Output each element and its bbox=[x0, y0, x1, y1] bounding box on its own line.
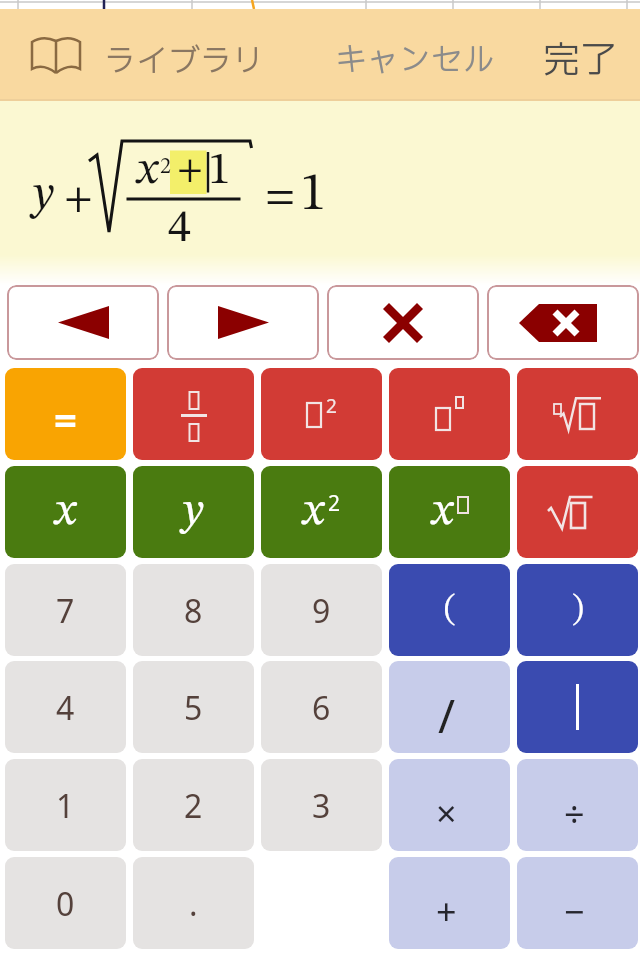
button[interactable] bbox=[389, 368, 510, 460]
staticText: 2 bbox=[184, 784, 203, 828]
button[interactable]: 5 bbox=[133, 661, 254, 753]
staticText: x bbox=[432, 489, 453, 535]
button[interactable] bbox=[327, 285, 479, 360]
button[interactable]: x bbox=[5, 466, 126, 558]
button[interactable]: キャンセル bbox=[330, 37, 500, 83]
button[interactable]: 3 bbox=[261, 759, 382, 851]
button[interactable]: 9 bbox=[261, 564, 382, 656]
button[interactable]: . bbox=[133, 857, 254, 949]
button[interactable] bbox=[517, 661, 638, 753]
button[interactable]: 完了 bbox=[535, 34, 625, 82]
button[interactable]: 4 bbox=[5, 661, 126, 753]
staticText: 2 bbox=[328, 489, 341, 518]
button[interactable]: ) bbox=[517, 564, 638, 656]
staticText: + bbox=[436, 887, 457, 936]
staticText: . bbox=[189, 882, 198, 926]
staticText: y bbox=[183, 489, 204, 535]
staticText: 0 bbox=[56, 882, 75, 926]
staticText: + bbox=[177, 153, 203, 189]
button[interactable]: x bbox=[261, 466, 382, 558]
staticText: = bbox=[265, 177, 296, 219]
staticText: 5 bbox=[184, 686, 203, 730]
button[interactable] bbox=[133, 368, 254, 460]
button[interactable]: 8 bbox=[133, 564, 254, 656]
button[interactable] bbox=[7, 285, 159, 360]
button[interactable]: = bbox=[5, 368, 126, 460]
button[interactable]: + bbox=[389, 857, 510, 949]
staticText: x bbox=[303, 489, 324, 535]
button[interactable]: ライブラリ bbox=[20, 27, 270, 85]
button[interactable] bbox=[517, 368, 638, 460]
button[interactable]: / bbox=[389, 661, 510, 753]
staticText: ( bbox=[444, 593, 456, 627]
button[interactable]: 0 bbox=[5, 857, 126, 949]
button[interactable]: 2 bbox=[133, 759, 254, 851]
staticText: 2 bbox=[160, 156, 171, 178]
button[interactable]: × bbox=[389, 759, 510, 851]
staticText: 8 bbox=[184, 589, 203, 633]
staticText: / bbox=[438, 684, 456, 747]
staticText: 1 bbox=[208, 148, 231, 194]
staticText: 3 bbox=[312, 784, 331, 828]
button[interactable]: − bbox=[517, 857, 638, 949]
button[interactable]: 6 bbox=[261, 661, 382, 753]
button[interactable] bbox=[517, 466, 638, 558]
staticText: + bbox=[64, 180, 93, 220]
button[interactable] bbox=[167, 285, 319, 360]
staticText: 4 bbox=[56, 686, 75, 730]
staticText: 4 bbox=[168, 206, 191, 252]
staticText: x bbox=[55, 489, 76, 535]
staticText: ÷ bbox=[564, 789, 585, 838]
button[interactable]: 2 bbox=[261, 368, 382, 460]
button[interactable]: ÷ bbox=[517, 759, 638, 851]
staticText: ライブラリ bbox=[104, 38, 265, 86]
staticText: 完了 bbox=[543, 34, 617, 82]
staticText: 9 bbox=[312, 589, 331, 633]
staticText: 1 bbox=[56, 784, 75, 828]
staticText: ) bbox=[572, 593, 584, 627]
staticText: = bbox=[54, 392, 77, 446]
staticText: 7 bbox=[56, 589, 75, 633]
staticText: 1 bbox=[300, 169, 327, 222]
button[interactable]: y bbox=[133, 466, 254, 558]
button[interactable]: 1 bbox=[5, 759, 126, 851]
staticText: − bbox=[564, 887, 585, 936]
button[interactable]: x bbox=[389, 466, 510, 558]
staticText: × bbox=[436, 789, 457, 838]
button[interactable]: ( bbox=[389, 564, 510, 656]
staticText: キャンセル bbox=[335, 37, 495, 83]
staticText: 6 bbox=[312, 686, 331, 730]
staticText: x bbox=[137, 148, 158, 194]
button[interactable]: 7 bbox=[5, 564, 126, 656]
staticText: y bbox=[33, 172, 54, 219]
staticText: 2 bbox=[326, 393, 337, 419]
button[interactable] bbox=[487, 285, 639, 360]
